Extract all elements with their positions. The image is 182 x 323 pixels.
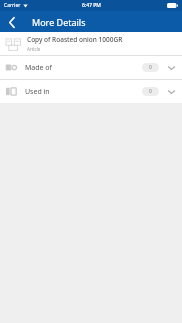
staticText: 0 (149, 64, 152, 71)
staticText: More Details (32, 16, 86, 28)
button[interactable]: Made of (0, 56, 182, 79)
button[interactable]: Back (4, 13, 20, 31)
other: Expand Used in (165, 86, 177, 98)
staticText: Carrier (4, 2, 21, 9)
button[interactable]: Used in (0, 80, 182, 103)
staticText: 6:47 PM (82, 2, 101, 9)
staticText: Copy of Roasted onion 1000GR (27, 35, 123, 44)
staticText: Used in (25, 87, 142, 97)
button[interactable]: Copy of Roasted onion 1000GR (0, 32, 182, 55)
staticText: Made of (25, 63, 142, 73)
other: Expand Made of (165, 62, 177, 74)
staticText: 0 (149, 88, 152, 95)
staticText: Article (27, 46, 41, 52)
